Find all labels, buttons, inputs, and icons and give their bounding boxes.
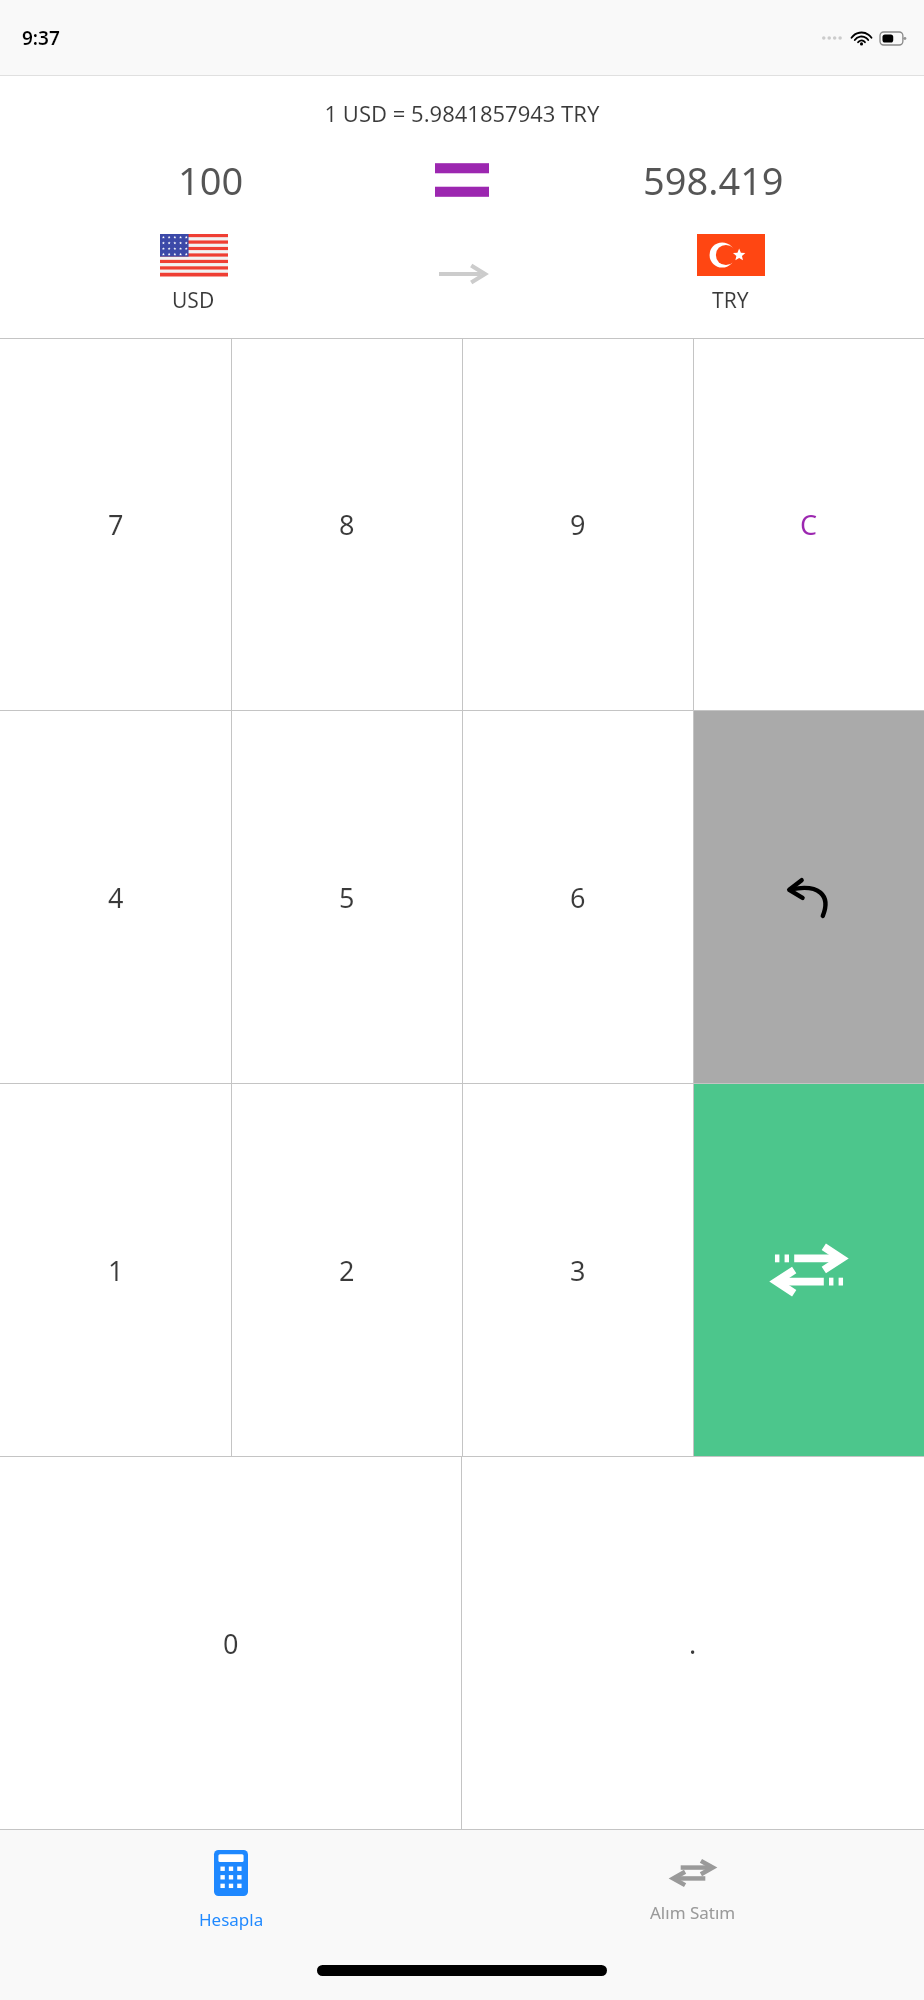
button[interactable]: 2 [232, 1084, 462, 1456]
button[interactable]: 3 [463, 1084, 693, 1456]
staticText: 598.419 [643, 154, 784, 206]
button[interactable]: 7 [0, 339, 231, 710]
button[interactable]: 9 [463, 339, 693, 710]
staticText: 7 [108, 506, 124, 543]
button[interactable]: 8 [232, 339, 462, 710]
button[interactable]: Alım Satım [462, 1830, 924, 1950]
staticText: TRY [712, 286, 749, 315]
staticText: 0 [223, 1625, 239, 1662]
button[interactable]: Swap currencies [694, 1084, 924, 1456]
staticText: 9 [570, 506, 586, 543]
staticText: 9:37 [22, 25, 60, 51]
button[interactable]: 0 [0, 1457, 461, 1829]
button[interactable]: TRY [537, 234, 924, 315]
staticText: . [689, 1625, 697, 1662]
button[interactable]: 5 [232, 711, 462, 1083]
staticText: 6 [570, 879, 586, 916]
button[interactable]: USD [0, 234, 387, 315]
button[interactable]: C [694, 339, 924, 710]
button[interactable]: 4 [0, 711, 231, 1083]
staticText: 8 [339, 506, 355, 543]
button[interactable]: 6 [463, 711, 693, 1083]
button[interactable]: 1 [0, 1084, 231, 1456]
staticText: Hesapla [199, 1908, 264, 1931]
other: Direction [439, 261, 485, 287]
staticText: 3 [570, 1252, 586, 1289]
staticText: C [800, 506, 818, 543]
staticText: Alım Satım [650, 1901, 736, 1924]
staticText: USD [172, 286, 215, 315]
staticText: 4 [108, 879, 124, 916]
staticText: 1 [108, 1252, 124, 1289]
staticText: 5 [339, 879, 355, 916]
staticText: 1 USD = 5.9841857943 TRY [0, 98, 924, 128]
staticText: 2 [339, 1252, 355, 1289]
staticText: 100 [178, 154, 244, 206]
button[interactable]: Hesapla [0, 1830, 462, 1950]
button[interactable]: Backspace [694, 711, 924, 1083]
